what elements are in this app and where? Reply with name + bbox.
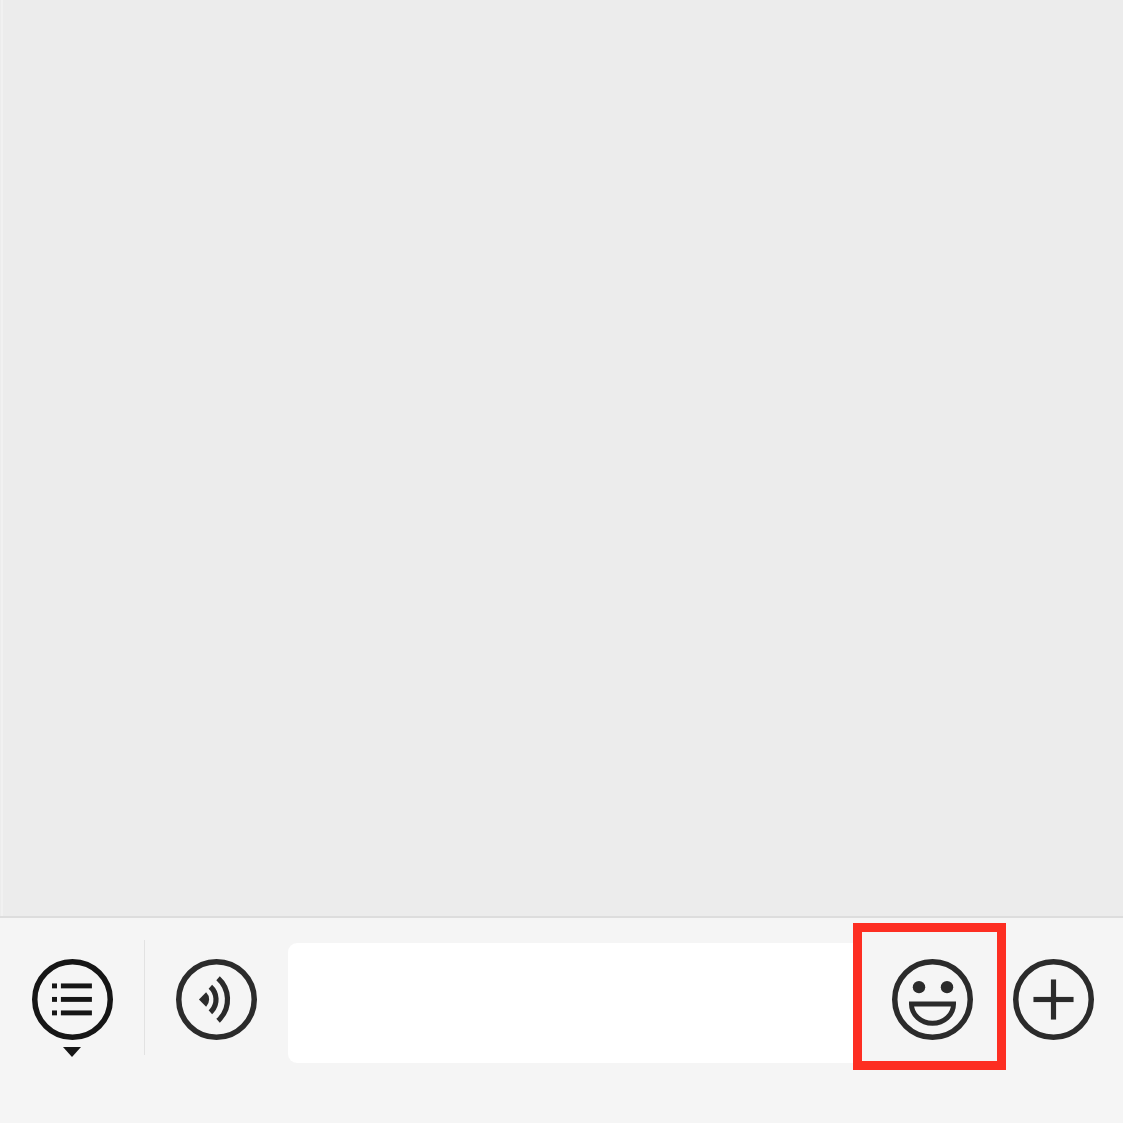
button[interactable] (288, 943, 863, 1063)
button[interactable]: Add (1013, 959, 1094, 1040)
button[interactable]: Emoji (853, 923, 1006, 1070)
button[interactable]: Change input method (32, 959, 113, 1040)
button[interactable]: Voice input (176, 959, 257, 1040)
